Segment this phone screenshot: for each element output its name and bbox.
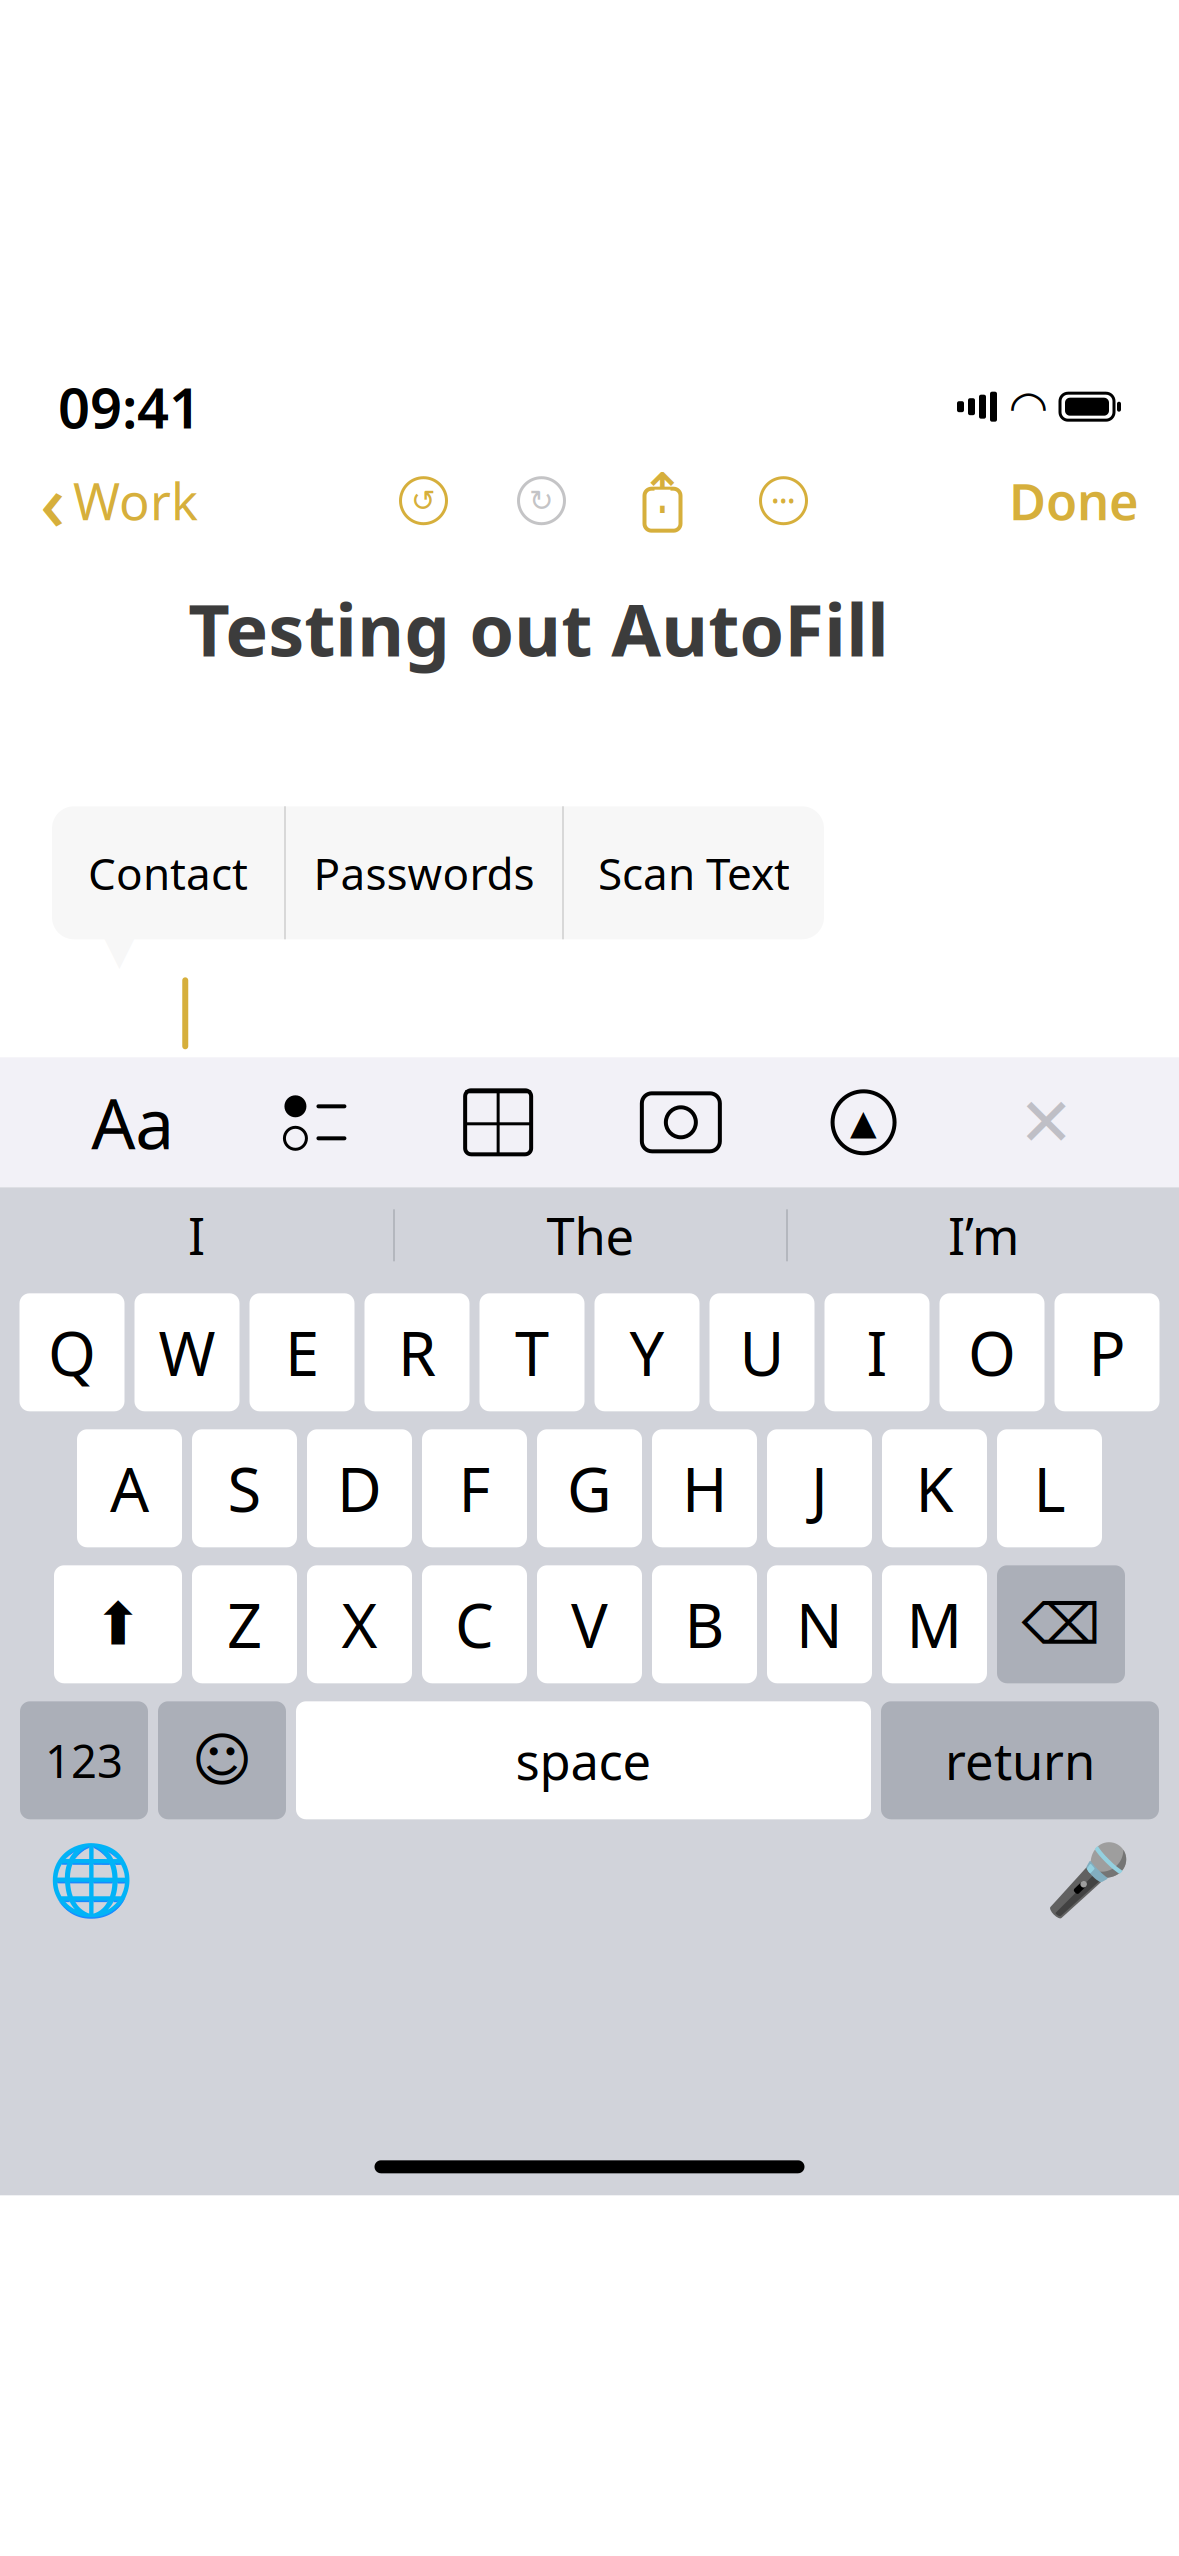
staticText: ☺ — [191, 1727, 252, 1794]
button[interactable]: Camera — [631, 1072, 731, 1172]
staticText: M — [906, 1584, 962, 1665]
staticText: ••• — [771, 487, 795, 514]
button[interactable]: Undo — [390, 468, 456, 534]
button[interactable]: F — [422, 1429, 527, 1547]
button[interactable]: Checklist — [265, 1072, 365, 1172]
button[interactable]: Dictate — [1033, 1825, 1143, 1935]
staticText: Passwords — [313, 844, 534, 902]
button[interactable]: N — [767, 1565, 872, 1683]
button[interactable]: More — [750, 468, 816, 534]
staticText: ▼ — [104, 928, 135, 973]
button[interactable]: R — [364, 1293, 469, 1411]
staticText: space — [515, 1727, 651, 1794]
button[interactable]: X — [307, 1565, 412, 1683]
button[interactable]: T — [479, 1293, 584, 1411]
staticText: The — [546, 1202, 634, 1269]
button[interactable]: The — [395, 1187, 786, 1283]
button[interactable]: Close keyboard — [996, 1072, 1096, 1172]
button[interactable]: Share — [626, 462, 698, 540]
staticText: I’m — [948, 1202, 1019, 1269]
staticText: B — [684, 1584, 724, 1665]
staticText: T — [515, 1312, 549, 1393]
staticText: J — [811, 1448, 828, 1529]
button[interactable]: ‹ — [30, 441, 208, 560]
staticText: ↑ — [639, 462, 686, 525]
staticText: G — [567, 1448, 612, 1529]
button[interactable]: Table — [448, 1072, 548, 1172]
button[interactable]: M — [882, 1565, 987, 1683]
button[interactable]: S — [192, 1429, 297, 1547]
staticText: ▲ — [850, 1103, 877, 1142]
staticText: 09:41 — [58, 369, 201, 444]
button[interactable]: ☺ — [158, 1701, 286, 1819]
staticText: return — [945, 1727, 1095, 1794]
staticText: 🌐 — [48, 1841, 134, 1920]
staticText: Q — [48, 1312, 96, 1393]
staticText: Contact — [88, 844, 248, 902]
staticText: ✕ — [1018, 1084, 1074, 1160]
button[interactable]: U — [709, 1293, 814, 1411]
staticText: O — [968, 1312, 1016, 1393]
button[interactable]: ⬆ — [54, 1565, 182, 1683]
staticText: Scan Text — [598, 844, 790, 902]
button[interactable]: A — [77, 1429, 182, 1547]
staticText: I — [866, 1312, 887, 1393]
staticText: R — [398, 1312, 436, 1393]
button[interactable]: 123 — [20, 1701, 148, 1819]
button[interactable]: Done — [999, 459, 1149, 542]
staticText: L — [1033, 1448, 1065, 1529]
button[interactable]: C — [422, 1565, 527, 1683]
button[interactable]: Scan Text — [564, 806, 824, 939]
staticText: Z — [227, 1584, 262, 1665]
staticText: 🎤 — [1045, 1841, 1131, 1920]
button[interactable]: Markup — [814, 1072, 914, 1172]
button[interactable]: V — [537, 1565, 642, 1683]
button[interactable]: return — [881, 1701, 1159, 1819]
staticText: I — [188, 1202, 205, 1269]
button[interactable]: G — [537, 1429, 642, 1547]
staticText: ◠ — [1011, 381, 1046, 432]
staticText: ⌫ — [1021, 1592, 1100, 1656]
staticText: ↺ — [411, 484, 436, 517]
button[interactable]: J — [767, 1429, 872, 1547]
button[interactable]: Z — [192, 1565, 297, 1683]
staticText: U — [739, 1312, 784, 1393]
button[interactable]: L — [997, 1429, 1102, 1547]
button[interactable]: Q — [19, 1293, 124, 1411]
staticText: Y — [629, 1312, 664, 1393]
staticText: Aa — [91, 1076, 174, 1168]
staticText: A — [110, 1448, 149, 1529]
button[interactable]: P — [1054, 1293, 1159, 1411]
staticText: 123 — [45, 1730, 123, 1790]
button[interactable]: ⌫ — [997, 1565, 1125, 1683]
staticText: D — [337, 1448, 382, 1529]
staticText: Done — [1009, 467, 1139, 534]
button[interactable]: Redo — [508, 468, 574, 534]
button[interactable]: O — [939, 1293, 1044, 1411]
staticText: Work — [73, 467, 198, 534]
button[interactable]: Contact — [52, 806, 284, 939]
button[interactable]: D — [307, 1429, 412, 1547]
button[interactable]: Next keyboard — [36, 1825, 146, 1935]
button[interactable]: Y — [594, 1293, 699, 1411]
button[interactable]: K — [882, 1429, 987, 1547]
staticText: ⬆ — [93, 1591, 142, 1658]
button[interactable]: H — [652, 1429, 757, 1547]
button[interactable]: I — [0, 1187, 393, 1283]
button[interactable]: B — [652, 1565, 757, 1683]
staticText: N — [796, 1584, 843, 1665]
button[interactable]: Passwords — [286, 806, 562, 939]
button[interactable]: space — [296, 1701, 871, 1819]
button[interactable]: I — [824, 1293, 929, 1411]
staticText: Testing out AutoFill — [188, 581, 888, 676]
staticText: ↻ — [529, 484, 554, 517]
staticText: C — [455, 1584, 494, 1665]
staticText: W — [158, 1312, 215, 1393]
staticText: F — [458, 1448, 490, 1529]
button[interactable]: Format — [83, 1072, 183, 1172]
button[interactable]: W — [134, 1293, 239, 1411]
button[interactable]: I’m — [788, 1187, 1179, 1283]
staticText: P — [1088, 1312, 1125, 1393]
staticText: V — [571, 1584, 608, 1665]
button[interactable]: E — [249, 1293, 354, 1411]
